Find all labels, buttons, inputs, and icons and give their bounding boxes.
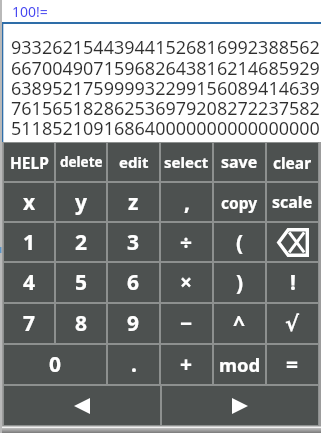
staticText: × xyxy=(180,268,193,297)
staticText: 4 xyxy=(23,268,36,297)
button[interactable]: mod xyxy=(214,345,265,384)
button[interactable]: 9 xyxy=(108,304,159,343)
button[interactable]: 1 xyxy=(4,223,54,261)
button[interactable]: × xyxy=(161,263,212,302)
button[interactable]: ! xyxy=(267,263,318,302)
staticText: delete xyxy=(60,153,103,171)
staticText: − xyxy=(180,309,193,338)
staticText: ) xyxy=(236,268,244,297)
staticText: edit xyxy=(119,152,149,172)
button[interactable]: z xyxy=(108,183,159,221)
button[interactable]: 4 xyxy=(4,263,54,302)
staticText: 8 xyxy=(75,309,88,338)
button[interactable]: √ xyxy=(267,304,318,343)
button[interactable]: Previous xyxy=(4,386,160,425)
staticText: select xyxy=(164,152,209,172)
button[interactable]: scale xyxy=(267,183,318,221)
button[interactable]: clear xyxy=(267,143,318,181)
staticText: x xyxy=(23,188,36,217)
button[interactable]: = xyxy=(267,345,318,384)
button[interactable]: 5 xyxy=(56,263,106,302)
staticText: 3 xyxy=(127,228,140,257)
button[interactable]: HELP xyxy=(4,143,54,181)
button[interactable]: copy xyxy=(214,183,265,221)
button[interactable]: 7 xyxy=(4,304,54,343)
staticText: 0 xyxy=(49,350,62,379)
button[interactable]: 6 xyxy=(108,263,159,302)
button[interactable]: 8 xyxy=(56,304,106,343)
button[interactable]: Backspace xyxy=(267,223,318,261)
button[interactable]: save xyxy=(214,143,265,181)
button[interactable]: 3 xyxy=(108,223,159,261)
staticText: clear xyxy=(273,152,312,173)
button[interactable]: − xyxy=(161,304,212,343)
staticText: scale xyxy=(272,191,313,213)
staticText: save xyxy=(221,151,258,173)
staticText: 2 xyxy=(75,228,88,257)
button[interactable]: 2 xyxy=(56,223,106,261)
button[interactable]: edit xyxy=(108,143,159,181)
staticText: ! xyxy=(290,268,296,297)
staticText: √ xyxy=(285,312,300,336)
button[interactable]: y xyxy=(56,183,106,221)
staticText: 100!= xyxy=(12,2,48,21)
staticText: 7 xyxy=(23,309,36,338)
staticText: 6 xyxy=(127,268,140,297)
staticText: y xyxy=(75,188,87,217)
staticText: = xyxy=(286,350,299,379)
staticText: , xyxy=(184,188,190,217)
button[interactable]: + xyxy=(161,345,212,384)
staticText: ÷ xyxy=(180,228,193,257)
button[interactable]: 0 xyxy=(4,345,106,384)
button[interactable]: select xyxy=(161,143,212,181)
staticText: ( xyxy=(236,228,244,257)
staticText: 9 xyxy=(127,309,140,338)
button[interactable]: delete xyxy=(56,143,106,181)
staticText: copy xyxy=(221,192,258,213)
button[interactable]: ( xyxy=(214,223,265,261)
button[interactable]: Next xyxy=(162,386,318,425)
button[interactable]: , xyxy=(161,183,212,221)
staticText: z xyxy=(128,188,139,217)
staticText: 5 xyxy=(75,268,88,297)
button[interactable]: x xyxy=(4,183,54,221)
staticText: + xyxy=(180,350,193,379)
staticText: . xyxy=(131,350,137,379)
staticText: mod xyxy=(219,352,261,377)
button[interactable]: ) xyxy=(214,263,265,302)
staticText: ^ xyxy=(233,309,246,338)
staticText: HELP xyxy=(10,152,49,173)
button[interactable]: . xyxy=(108,345,159,384)
staticText: 1 xyxy=(23,228,36,257)
button[interactable]: ÷ xyxy=(161,223,212,261)
button[interactable]: ^ xyxy=(214,304,265,343)
staticText: 933262154439441526816992388562 667004907… xyxy=(11,35,320,140)
